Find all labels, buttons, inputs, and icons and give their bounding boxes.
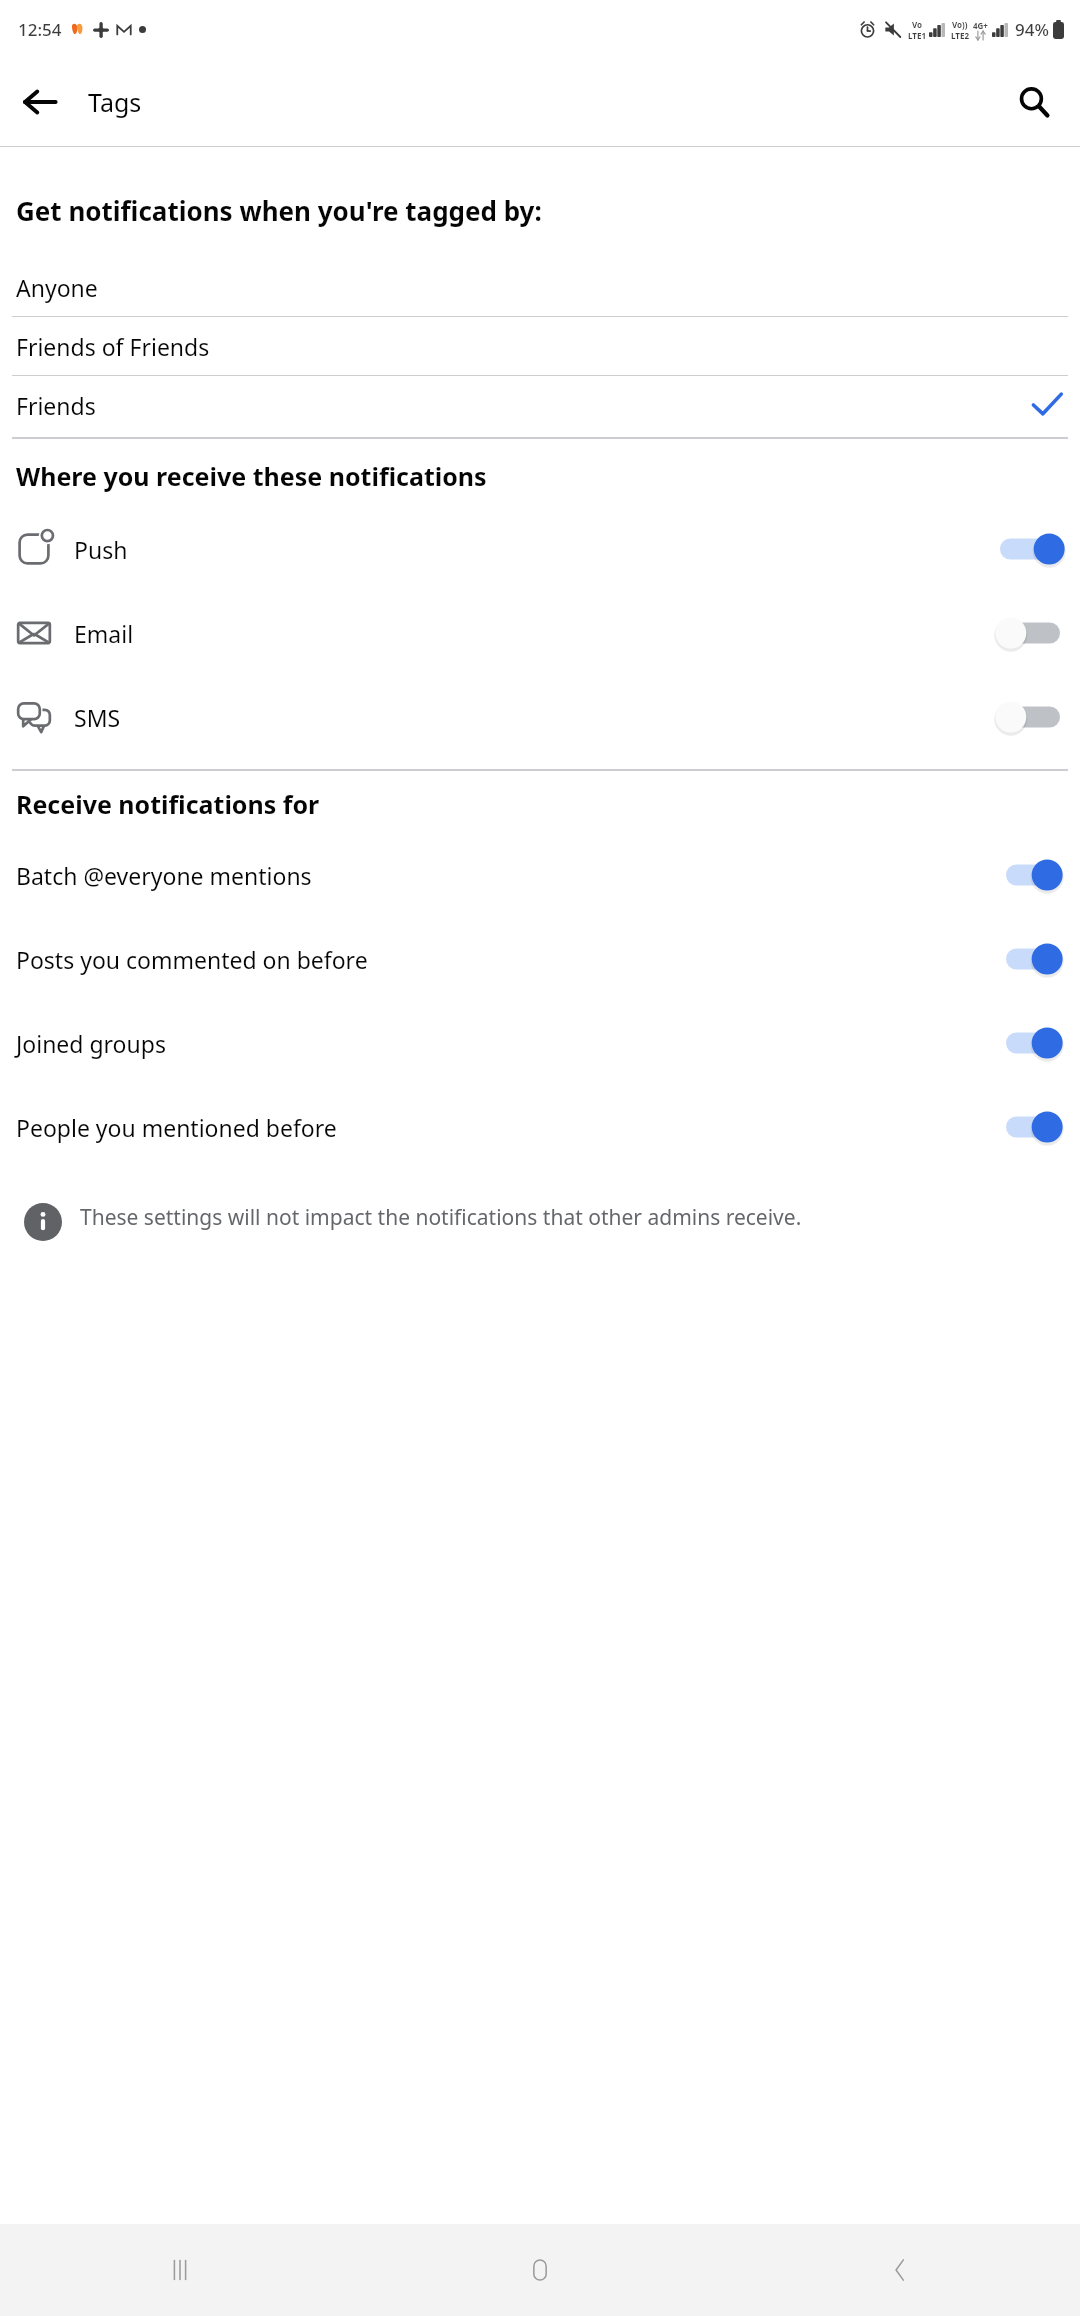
button[interactable]: Joined groups (0, 1001, 1080, 1085)
staticText: LTE2 (951, 30, 969, 41)
button[interactable]: SMS (0, 675, 1080, 759)
staticText: Where you receive these notifications (16, 459, 487, 493)
staticText: 4G+ (973, 20, 988, 31)
button[interactable]: Back (10, 72, 70, 132)
staticText: Anyone (16, 272, 98, 303)
staticText: Push (74, 534, 128, 565)
staticText: LTE1 (908, 30, 926, 41)
staticText: Tags (88, 85, 142, 119)
button[interactable]: People you mentioned before (0, 1085, 1080, 1169)
staticText: Friends (16, 390, 96, 421)
button[interactable]: Email (0, 591, 1080, 675)
staticText: Vo)) (952, 19, 968, 30)
staticText: 94% (1015, 18, 1049, 41)
staticText: Receive notifications for (16, 787, 320, 821)
staticText: 12:54 (18, 18, 62, 41)
staticText: Friends of Friends (16, 331, 210, 362)
staticText: SMS (74, 702, 121, 733)
button[interactable]: Push (0, 507, 1080, 591)
button[interactable]: Friends (0, 376, 1080, 434)
staticText: Vo (912, 19, 923, 30)
button[interactable]: Search (1004, 72, 1064, 132)
button[interactable]: Friends of Friends (0, 317, 1080, 375)
button[interactable]: Recent apps (0, 2224, 360, 2316)
staticText: People you mentioned before (16, 1112, 337, 1143)
staticText: Batch @everyone mentions (16, 860, 312, 891)
staticText: Email (74, 618, 134, 649)
staticText: These settings will not impact the notif… (80, 1203, 802, 1232)
button[interactable]: Anyone (0, 258, 1080, 316)
button[interactable]: Batch @everyone mentions (0, 833, 1080, 917)
staticText: Joined groups (16, 1028, 166, 1059)
staticText: Get notifications when you're tagged by: (16, 193, 542, 228)
staticText: Posts you commented on before (16, 944, 368, 975)
button[interactable]: Home (360, 2224, 720, 2316)
button[interactable]: Posts you commented on before (0, 917, 1080, 1001)
